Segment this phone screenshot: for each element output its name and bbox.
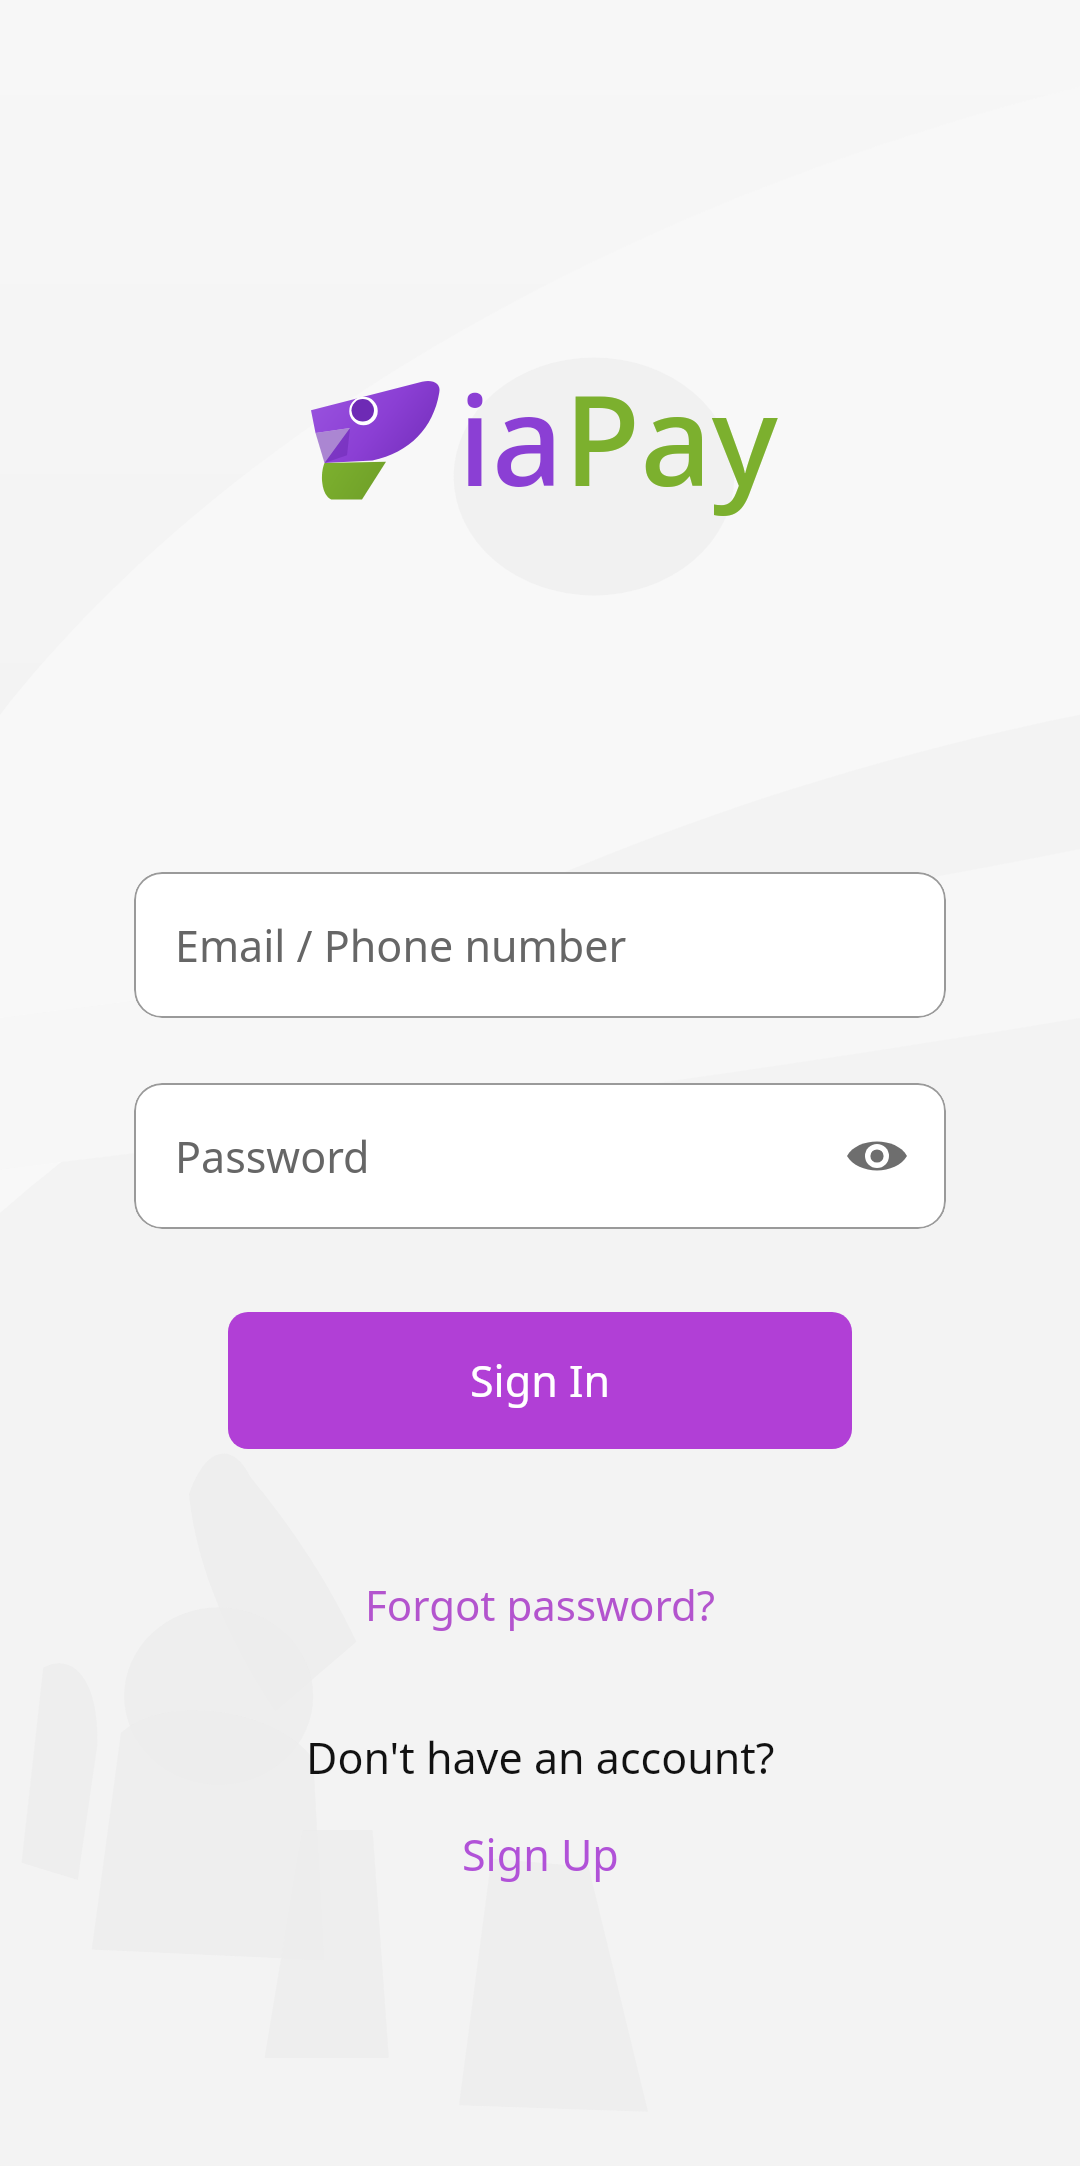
- staticText: Sign In: [470, 1351, 611, 1410]
- staticText: Password: [175, 1127, 370, 1186]
- staticText: Sign Up: [462, 1825, 619, 1884]
- button[interactable]: Sign In: [228, 1312, 852, 1449]
- button[interactable]: Sign Up: [438, 1813, 643, 1896]
- staticText: Forgot password?: [365, 1576, 716, 1633]
- staticText: Pay: [564, 352, 778, 522]
- staticText: Email / Phone number: [175, 916, 627, 975]
- button[interactable]: Email / Phone number: [134, 872, 946, 1018]
- other: ZiaPay logo: [302, 372, 452, 502]
- button[interactable]: Password: [134, 1083, 946, 1229]
- staticText: ia: [458, 352, 564, 522]
- button[interactable]: Show password: [834, 1113, 920, 1199]
- staticText: Don't have an account?: [306, 1728, 775, 1787]
- button[interactable]: Forgot password?: [341, 1562, 740, 1647]
